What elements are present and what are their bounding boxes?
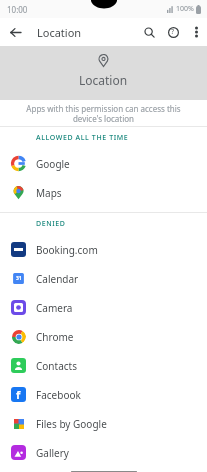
button[interactable]: Help	[161, 20, 185, 44]
staticText: Contacts	[36, 359, 77, 373]
staticText: Location	[79, 72, 128, 88]
button[interactable]: Contacts	[0, 351, 207, 380]
staticText: Gallery	[36, 446, 69, 460]
staticText: Files by Google	[36, 417, 107, 431]
button[interactable]: f	[0, 380, 207, 409]
staticText: 100%	[176, 4, 194, 14]
staticText: ALLOWED ALL THE TIME	[36, 133, 129, 143]
staticText: Facebook	[36, 388, 81, 402]
button[interactable]: 31	[0, 264, 207, 293]
staticText: Apps with this permission can access thi…	[16, 103, 191, 124]
staticText: Camera	[36, 301, 73, 315]
button[interactable]: Booking.com	[0, 235, 207, 264]
button[interactable]: Google	[0, 149, 207, 178]
staticText: Google	[36, 157, 70, 171]
staticText: ?	[171, 27, 175, 37]
button[interactable]: More options	[185, 21, 207, 43]
button[interactable]: Search	[137, 20, 161, 44]
staticText: Location	[37, 25, 82, 40]
button[interactable]: Chrome	[0, 322, 207, 351]
staticText: Chrome	[36, 330, 74, 344]
button[interactable]: Files by Google	[0, 409, 207, 438]
button[interactable]: Back	[4, 21, 26, 43]
button[interactable]: Maps	[0, 178, 207, 207]
staticText: Maps	[36, 186, 62, 200]
staticText: DENIED	[36, 219, 66, 229]
staticText: 10:00	[7, 4, 28, 15]
staticText: f	[16, 387, 21, 402]
button[interactable]: Camera	[0, 293, 207, 322]
button[interactable]: Gallery	[0, 438, 207, 467]
staticText: 31	[16, 275, 22, 282]
staticText: Calendar	[36, 272, 79, 286]
staticText: Booking.com	[36, 243, 98, 257]
